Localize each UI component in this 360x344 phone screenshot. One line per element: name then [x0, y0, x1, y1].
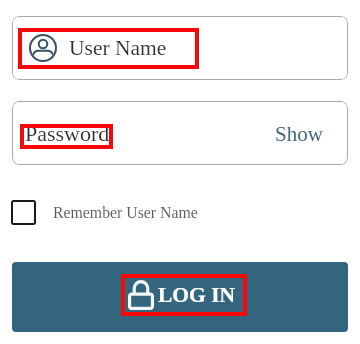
staticText: Show — [275, 122, 323, 145]
button[interactable]: Show — [275, 122, 323, 145]
button[interactable]: Remember User Name checkbox — [11, 200, 36, 225]
button[interactable]: User Name — [12, 16, 348, 80]
button[interactable]: Remember User Name checkbox — [11, 200, 198, 225]
button[interactable]: Password — [12, 101, 348, 165]
staticText: User Name — [69, 36, 167, 60]
staticText: Remember User Name — [53, 204, 198, 221]
staticText: Password — [25, 121, 110, 145]
button[interactable]: LOG IN — [12, 262, 348, 332]
staticText: LOG IN — [158, 283, 236, 307]
